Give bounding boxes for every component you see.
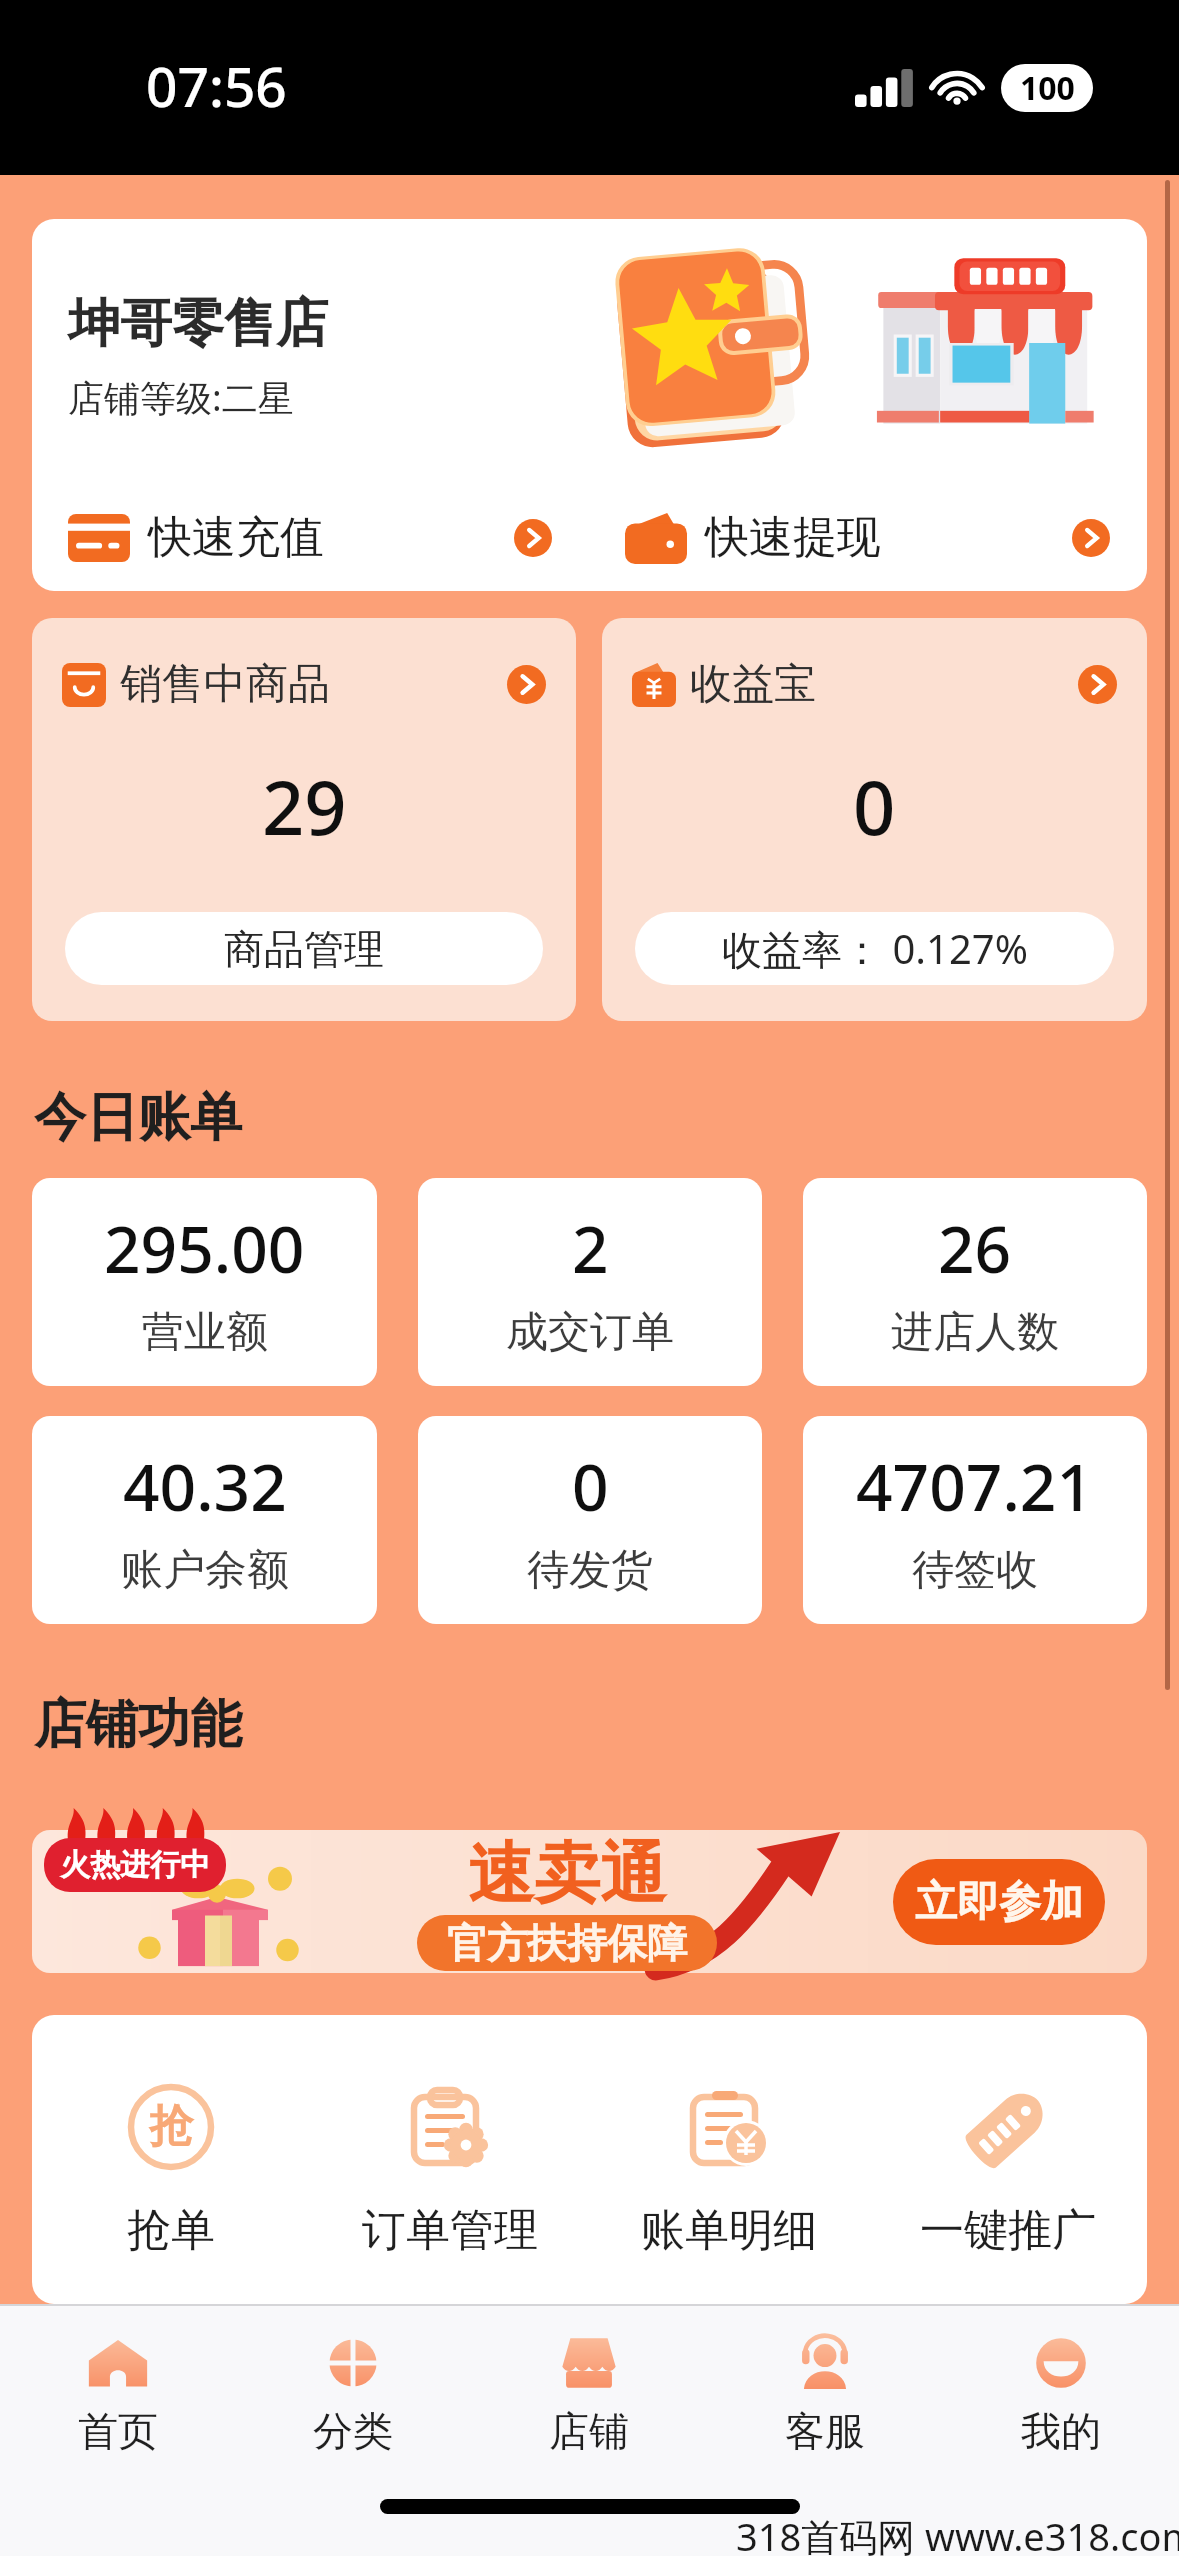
- staticText: 进店人数: [891, 1306, 1059, 1359]
- staticText: 收益宝: [690, 658, 816, 711]
- staticText: 坤哥零售店: [68, 291, 328, 357]
- staticText: 速卖通: [468, 1832, 666, 1915]
- staticText: 一键推广: [920, 2203, 1096, 2258]
- staticText: 账户余额: [121, 1544, 289, 1597]
- button[interactable]: 抢: [32, 2077, 310, 2258]
- button[interactable]: 4707.21: [803, 1416, 1147, 1624]
- button[interactable]: 一键推广: [868, 2077, 1147, 2258]
- staticText: 火热进行中: [60, 1846, 210, 1884]
- button[interactable]: 快速提现: [589, 510, 1147, 565]
- button[interactable]: 快速充值: [32, 510, 589, 565]
- button[interactable]: 0: [418, 1416, 762, 1624]
- staticText: 快速提现: [705, 510, 881, 565]
- staticText: 100: [1020, 66, 1075, 110]
- button[interactable]: 40.32: [32, 1416, 377, 1624]
- staticText: 成交订单: [506, 1306, 674, 1359]
- button[interactable]: 收益宝: [602, 618, 1147, 1021]
- staticText: 2: [572, 1205, 609, 1292]
- staticText: 29: [262, 756, 347, 857]
- staticText: 店铺等级:二星: [68, 373, 294, 422]
- staticText: 295.00: [104, 1205, 305, 1292]
- button[interactable]: 分类: [235, 2332, 471, 2451]
- button[interactable]: 收益率： 0.127%: [635, 912, 1114, 985]
- button[interactable]: 销售中商品: [32, 618, 576, 1021]
- staticText: 快速充值: [148, 510, 324, 565]
- staticText: 今日账单: [34, 1085, 242, 1151]
- button[interactable]: 店铺: [471, 2332, 707, 2451]
- staticText: 分类: [313, 2406, 393, 2451]
- button[interactable]: 立即参加: [893, 1859, 1105, 1945]
- button[interactable]: 295.00: [32, 1178, 377, 1386]
- staticText: 我的: [1021, 2406, 1101, 2451]
- staticText: 抢单: [127, 2203, 215, 2258]
- staticText: 26: [938, 1205, 1012, 1292]
- staticText: 0: [572, 1443, 609, 1530]
- staticText: 店铺: [549, 2406, 629, 2451]
- staticText: 订单管理: [362, 2203, 538, 2258]
- staticText: 商品管理: [224, 924, 384, 974]
- staticText: 客服: [785, 2406, 865, 2451]
- button[interactable]: 火热进行中: [32, 1830, 1147, 1973]
- staticText: 营业额: [142, 1306, 268, 1359]
- button[interactable]: 订单管理: [310, 2077, 589, 2258]
- staticText: 店铺功能: [34, 1692, 242, 1758]
- staticText: 07:56: [146, 48, 287, 123]
- staticText: 4707.21: [856, 1443, 1094, 1530]
- button[interactable]: 客服: [707, 2332, 943, 2451]
- button[interactable]: 我的: [943, 2332, 1179, 2451]
- button[interactable]: 26: [803, 1178, 1147, 1386]
- staticText: 收益率： 0.127%: [722, 921, 1028, 976]
- button[interactable]: 2: [418, 1178, 762, 1386]
- staticText: 销售中商品: [120, 658, 330, 711]
- staticText: 40.32: [123, 1443, 287, 1530]
- staticText: 待发货: [527, 1544, 653, 1597]
- staticText: 账单明细: [641, 2203, 817, 2258]
- staticText: 首页: [78, 2406, 158, 2451]
- staticText: 立即参加: [915, 1876, 1083, 1929]
- button[interactable]: 账单明细: [589, 2077, 868, 2258]
- staticText: 0: [853, 756, 896, 857]
- button[interactable]: 商品管理: [65, 912, 543, 985]
- staticText: 318首码网 www.e318.com: [736, 2510, 1179, 2556]
- staticText: 抢: [149, 2099, 193, 2154]
- button[interactable]: 首页: [0, 2332, 235, 2451]
- staticText: 待签收: [912, 1544, 1038, 1597]
- staticText: 官方扶持保障: [447, 1918, 687, 1968]
